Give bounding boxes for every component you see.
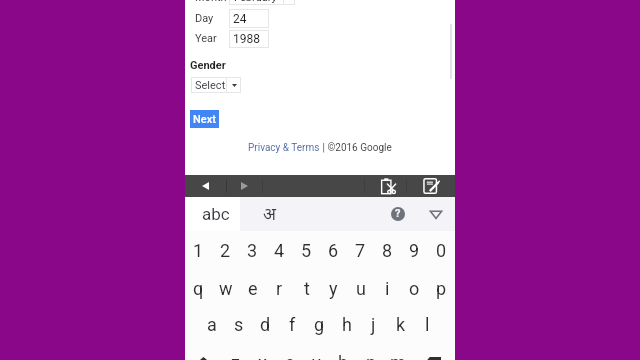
staticText: 4 bbox=[274, 240, 285, 261]
button[interactable]: 6 bbox=[320, 231, 347, 269]
staticText: ? bbox=[395, 207, 401, 220]
button[interactable]: t bbox=[293, 269, 320, 307]
button[interactable]: n bbox=[357, 343, 384, 360]
button[interactable]: c bbox=[276, 343, 303, 360]
staticText: a bbox=[207, 314, 217, 335]
staticText: 1 bbox=[193, 240, 204, 261]
button[interactable]: Edit bbox=[413, 175, 448, 197]
button[interactable]: 5 bbox=[293, 231, 320, 269]
staticText: d bbox=[260, 314, 271, 335]
button[interactable]: a bbox=[199, 305, 225, 343]
button[interactable]: i bbox=[374, 269, 401, 307]
staticText: l bbox=[425, 314, 430, 335]
button[interactable]: Back bbox=[185, 175, 226, 197]
staticText: 24 bbox=[233, 12, 247, 26]
button[interactable]: Privacy & Terms bbox=[248, 142, 320, 154]
staticText: n bbox=[366, 352, 376, 360]
button[interactable]: 24 bbox=[229, 9, 269, 28]
staticText: Gender bbox=[190, 59, 226, 72]
staticText: अ bbox=[263, 202, 276, 225]
button[interactable]: 7 bbox=[347, 231, 374, 269]
staticText: 6 bbox=[328, 240, 339, 261]
staticText: 1988 bbox=[233, 32, 260, 46]
staticText: Day bbox=[195, 12, 214, 25]
staticText: j bbox=[371, 314, 376, 335]
button[interactable]: u bbox=[347, 269, 374, 307]
button[interactable]: Shift bbox=[185, 343, 222, 360]
button[interactable]: abc bbox=[185, 197, 240, 231]
button[interactable]: p bbox=[428, 269, 455, 307]
staticText: x bbox=[258, 352, 267, 360]
button[interactable]: h bbox=[333, 305, 360, 343]
button[interactable]: g bbox=[306, 305, 333, 343]
button[interactable]: j bbox=[360, 305, 387, 343]
staticText: v bbox=[312, 352, 321, 360]
staticText: February bbox=[234, 0, 277, 4]
staticText: i bbox=[385, 278, 390, 299]
staticText: z bbox=[231, 352, 240, 360]
staticText: 0 bbox=[436, 240, 447, 261]
button[interactable] bbox=[229, 0, 295, 5]
staticText: 2 bbox=[220, 240, 231, 261]
button[interactable]: w bbox=[212, 269, 239, 307]
staticText: u bbox=[356, 278, 366, 299]
button[interactable]: z bbox=[222, 343, 249, 360]
button[interactable]: Help bbox=[391, 207, 405, 221]
button[interactable]: Hide keyboard bbox=[429, 207, 443, 221]
staticText: e bbox=[248, 278, 258, 299]
button[interactable]: q bbox=[185, 269, 212, 307]
staticText: p bbox=[436, 278, 447, 299]
staticText: w bbox=[219, 278, 233, 299]
staticText: Next bbox=[193, 113, 216, 126]
staticText: t bbox=[304, 278, 310, 299]
staticText: 8 bbox=[382, 240, 393, 261]
button[interactable]: 8 bbox=[374, 231, 401, 269]
staticText: Year bbox=[195, 32, 217, 45]
button[interactable]: m bbox=[384, 343, 411, 360]
button[interactable]: Forward bbox=[227, 175, 262, 197]
button[interactable]: 2 bbox=[212, 231, 239, 269]
staticText: b bbox=[338, 352, 349, 360]
staticText: 9 bbox=[409, 240, 420, 261]
button[interactable]: f bbox=[279, 305, 306, 343]
staticText: c bbox=[285, 352, 295, 360]
button[interactable]: o bbox=[401, 269, 428, 307]
staticText: s bbox=[234, 314, 244, 335]
staticText: m bbox=[390, 352, 406, 360]
staticText: 3 bbox=[247, 240, 258, 261]
button[interactable]: 1 bbox=[185, 231, 212, 269]
staticText: abc bbox=[202, 204, 230, 224]
button[interactable]: k bbox=[387, 305, 414, 343]
staticText: g bbox=[314, 314, 325, 335]
button[interactable]: Backspace bbox=[411, 343, 455, 360]
staticText: Month bbox=[195, 0, 227, 4]
staticText: o bbox=[409, 278, 420, 299]
staticText: Select bbox=[195, 79, 226, 92]
staticText: 5 bbox=[301, 240, 312, 261]
button[interactable]: r bbox=[266, 269, 293, 307]
staticText: h bbox=[342, 314, 352, 335]
staticText: r bbox=[276, 278, 283, 299]
button[interactable]: x bbox=[249, 343, 276, 360]
button[interactable]: 1988 bbox=[229, 30, 269, 48]
button[interactable]: e bbox=[239, 269, 266, 307]
button[interactable]: 9 bbox=[401, 231, 428, 269]
staticText: f bbox=[289, 314, 296, 335]
button[interactable]: l bbox=[414, 305, 441, 343]
button[interactable]: b bbox=[330, 343, 357, 360]
button[interactable]: Cut bbox=[371, 175, 406, 197]
staticText: 7 bbox=[355, 240, 366, 261]
staticText: | ©2016 Google bbox=[320, 142, 392, 154]
staticText: y bbox=[329, 278, 338, 299]
button[interactable]: 4 bbox=[266, 231, 293, 269]
staticText: q bbox=[193, 278, 204, 299]
button[interactable]: 0 bbox=[428, 231, 455, 269]
staticText: k bbox=[396, 314, 406, 335]
button[interactable]: s bbox=[225, 305, 252, 343]
button[interactable]: v bbox=[303, 343, 330, 360]
button[interactable]: d bbox=[252, 305, 279, 343]
button[interactable]: 3 bbox=[239, 231, 266, 269]
button[interactable]: Select bbox=[191, 77, 241, 93]
button[interactable]: Next bbox=[190, 110, 219, 128]
button[interactable]: y bbox=[320, 269, 347, 307]
